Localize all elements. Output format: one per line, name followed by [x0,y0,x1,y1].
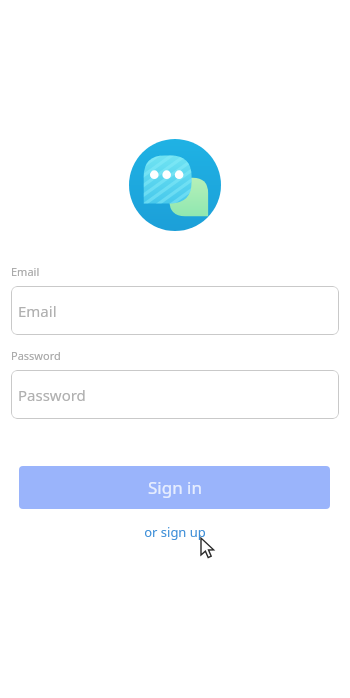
button[interactable]: or sign up [140,521,210,543]
button[interactable]: Email [11,286,339,335]
button[interactable]: Sign in [19,466,330,509]
button[interactable]: Password [11,370,339,419]
staticText: or sign up [144,523,206,541]
staticText: Sign in [148,476,202,499]
staticText: Password [11,348,61,363]
other: App logo [129,139,221,231]
staticText: Password [18,385,86,405]
staticText: Email [11,264,40,279]
staticText: Email [18,301,57,321]
